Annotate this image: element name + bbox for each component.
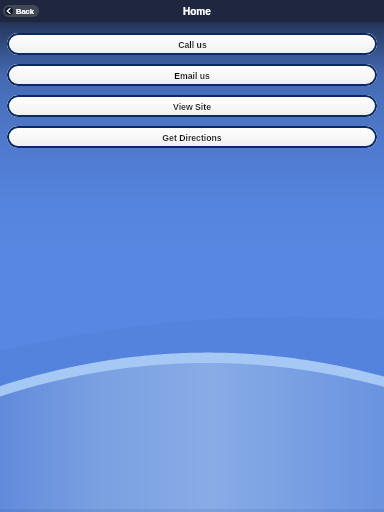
staticText: Home <box>183 6 211 17</box>
staticText: View Site <box>173 102 211 112</box>
staticText: Call us <box>178 40 207 50</box>
button[interactable]: Back <box>3 5 39 17</box>
staticText: Get Directions <box>162 133 222 143</box>
button[interactable]: View Site <box>7 95 377 117</box>
other: Back <box>5 7 13 15</box>
button[interactable]: Call us <box>7 33 377 55</box>
button[interactable]: Get Directions <box>7 126 377 148</box>
button[interactable]: Email us <box>7 64 377 86</box>
staticText: Email us <box>174 71 210 81</box>
staticText: Back <box>16 7 34 15</box>
